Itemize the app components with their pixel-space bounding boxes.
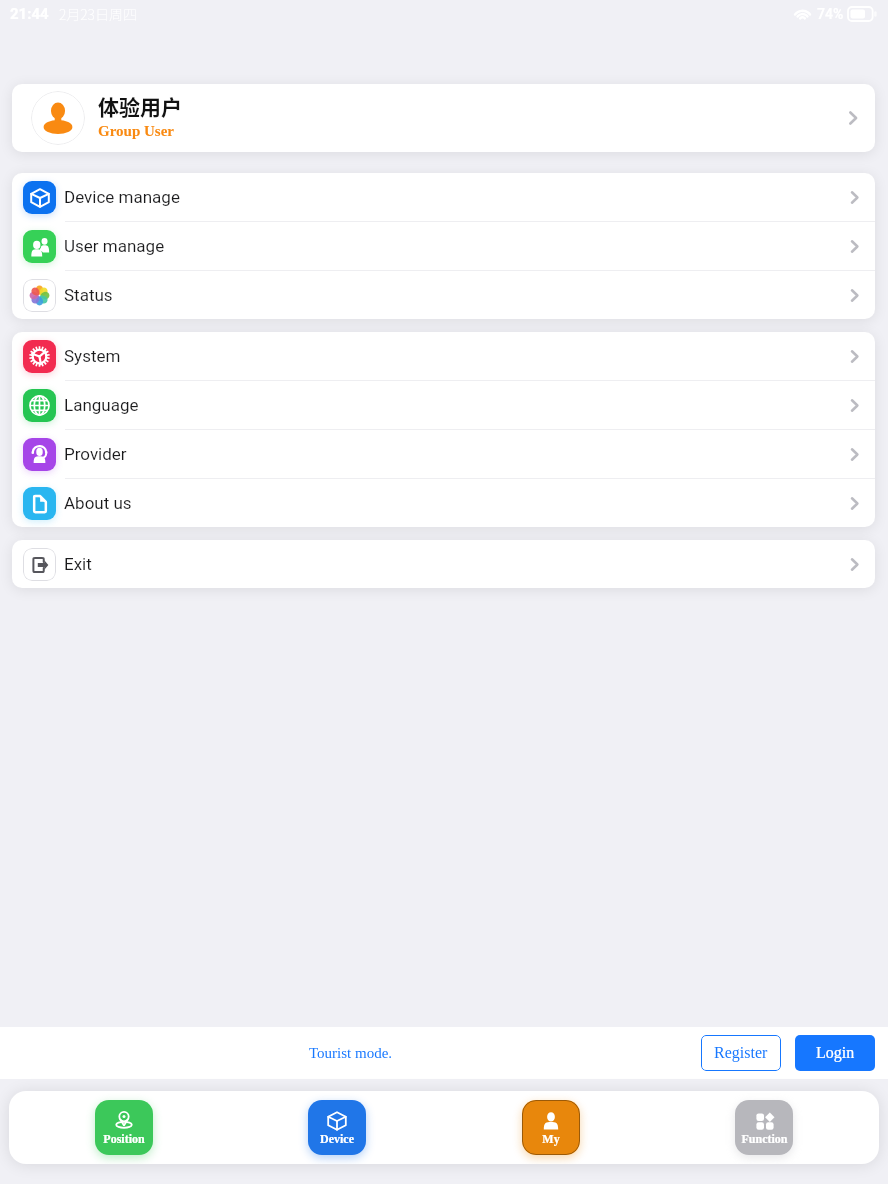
staticText: User manage <box>64 236 165 256</box>
staticText: 体验用户 <box>98 91 182 121</box>
staticText: Provider <box>64 444 127 464</box>
staticText: Login <box>816 1044 855 1062</box>
button[interactable]: Exit <box>12 540 875 588</box>
staticText: System <box>64 346 121 366</box>
button[interactable]: Register <box>701 1035 781 1071</box>
staticText: Position <box>103 1132 145 1145</box>
button[interactable]: Position <box>95 1100 153 1155</box>
staticText: 2月23日周四 <box>59 4 137 24</box>
button[interactable]: Device <box>308 1100 366 1155</box>
staticText: Device <box>320 1132 354 1145</box>
button[interactable]: Login <box>795 1035 875 1071</box>
staticText: Function <box>741 1132 788 1145</box>
button[interactable]: System <box>12 332 875 380</box>
button[interactable]: Status <box>12 271 875 319</box>
button[interactable]: User manage <box>12 222 875 270</box>
button[interactable]: Language <box>12 381 875 429</box>
staticText: 74% <box>817 6 844 22</box>
staticText: Status <box>64 285 113 305</box>
staticText: Group User <box>98 123 174 140</box>
button[interactable]: About us <box>12 479 875 527</box>
button[interactable]: Function <box>735 1100 793 1155</box>
staticText: Register <box>714 1044 768 1062</box>
button[interactable]: Device manage <box>12 173 875 221</box>
staticText: My <box>542 1132 560 1145</box>
button[interactable]: Provider <box>12 430 875 478</box>
staticText: Exit <box>64 554 92 574</box>
staticText: 21:44 <box>10 5 49 23</box>
button[interactable]: My <box>522 1100 580 1155</box>
staticText: Device manage <box>64 187 180 207</box>
staticText: Language <box>64 395 139 415</box>
staticText: Tourist mode. <box>309 1045 393 1062</box>
staticText: About us <box>64 493 132 513</box>
button[interactable]: Profile: 体验用户, Group User <box>12 84 875 152</box>
